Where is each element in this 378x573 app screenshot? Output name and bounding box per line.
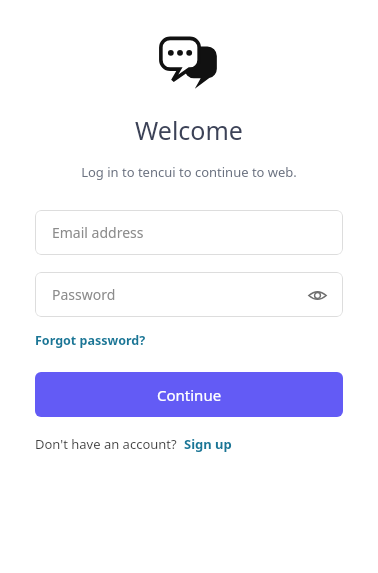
staticText: Welcome — [135, 113, 243, 147]
staticText: Sign up — [184, 435, 232, 453]
staticText: Continue — [157, 385, 222, 405]
staticText: Password — [52, 285, 304, 304]
button[interactable]: Continue — [35, 372, 343, 417]
button[interactable]: Show password — [304, 282, 330, 308]
button[interactable]: Sign up — [184, 433, 232, 455]
staticText: Log in to tencui to continue to web. — [81, 163, 297, 181]
staticText: Forgot password? — [35, 332, 146, 349]
staticText: Don't have an account? — [35, 435, 177, 453]
button[interactable]: Password — [35, 272, 343, 317]
button[interactable]: Forgot password? — [35, 330, 146, 351]
button[interactable]: Email address — [35, 210, 343, 255]
staticText: Email address — [52, 223, 144, 242]
